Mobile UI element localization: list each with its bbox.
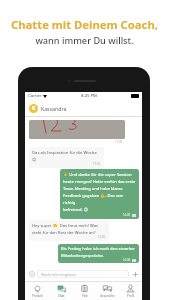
staticText: 17:06	[93, 162, 101, 166]
staticText: wann immer Du willst.	[35, 34, 134, 47]
staticText: Gespräche	[100, 294, 115, 298]
staticText: Bis Freitag habe ich noch den einzelne M…	[61, 246, 135, 258]
staticText: 14:26	[123, 213, 131, 217]
button[interactable]: Produkt	[25, 282, 49, 300]
staticText: Produkt	[32, 294, 43, 298]
button[interactable]: Profil	[119, 282, 142, 300]
button[interactable]: Add attachment	[131, 270, 139, 278]
button[interactable]: Bis Freitag habe ich noch den einzelne M…	[61, 246, 136, 262]
staticText: 17:06	[115, 140, 123, 144]
staticText: Plan	[82, 294, 88, 298]
button[interactable]: Nachricht eingeben	[37, 270, 129, 278]
staticText: Chatte mit Deinem Coach,	[11, 17, 158, 32]
button[interactable]: Das als Inspiration für die Woche 😊	[32, 150, 101, 166]
button[interactable]: Plan	[73, 282, 96, 300]
staticText: 🙏 Und danke für die super Session heute …	[63, 172, 136, 213]
button[interactable]: Camera	[28, 270, 36, 278]
button[interactable]: Chat	[49, 282, 73, 300]
button[interactable]: 🙏 Und danke für die super Session heute …	[63, 172, 136, 217]
staticText: Das als Inspiration für die Woche 😊	[32, 150, 101, 162]
staticText: Nachricht eingeben	[41, 272, 77, 277]
staticText: 8:25 PM	[81, 93, 97, 99]
staticText: Profil	[127, 294, 135, 298]
staticText: Carrier	[28, 93, 42, 99]
staticText: Kassandra	[41, 105, 67, 112]
button[interactable]: Hey super 👏. Das freut mich! Was steht f…	[32, 223, 106, 239]
staticText: Hey super 👏. Das freut mich! Was steht f…	[32, 223, 98, 235]
staticText: 14:34	[123, 258, 131, 262]
staticText: Chat	[58, 294, 65, 298]
staticText: 14:30	[98, 235, 106, 239]
staticText: K	[32, 105, 36, 112]
button[interactable]: Gespräche	[96, 282, 119, 300]
